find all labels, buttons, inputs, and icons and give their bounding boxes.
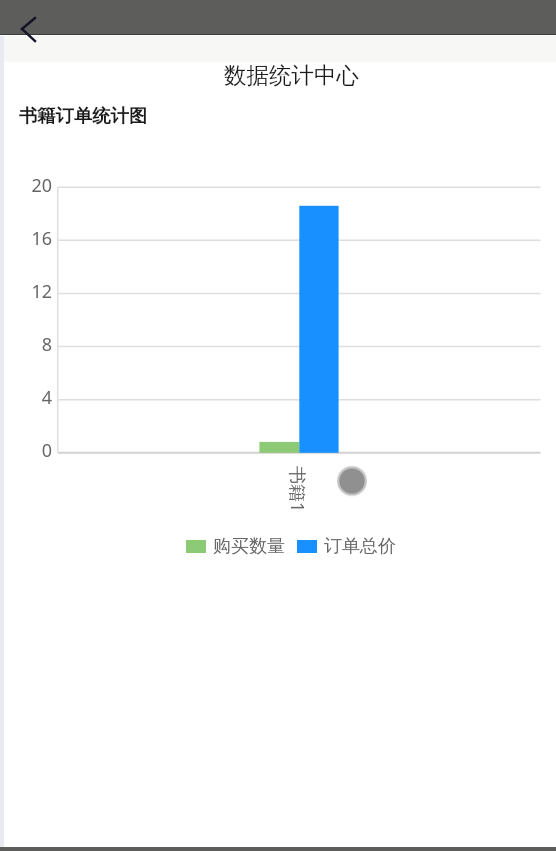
staticText: 8: [16, 332, 52, 357]
button[interactable]: 订单总价: [297, 535, 396, 558]
staticText: 订单总价: [324, 535, 396, 558]
staticText: 购买数量: [213, 535, 285, 558]
staticText: 0: [16, 438, 52, 463]
staticText: 16: [16, 226, 52, 251]
staticText: 书籍1: [286, 466, 310, 513]
button[interactable]: Data point handle: [336, 465, 368, 497]
staticText: 20: [16, 173, 52, 198]
staticText: 4: [16, 385, 52, 410]
staticText: 12: [16, 279, 52, 304]
staticText: 数据统计中心: [224, 61, 359, 89]
staticText: 书籍订单统计图: [19, 104, 148, 127]
button[interactable]: Back: [12, 14, 44, 46]
button[interactable]: 购买数量: [186, 535, 285, 558]
